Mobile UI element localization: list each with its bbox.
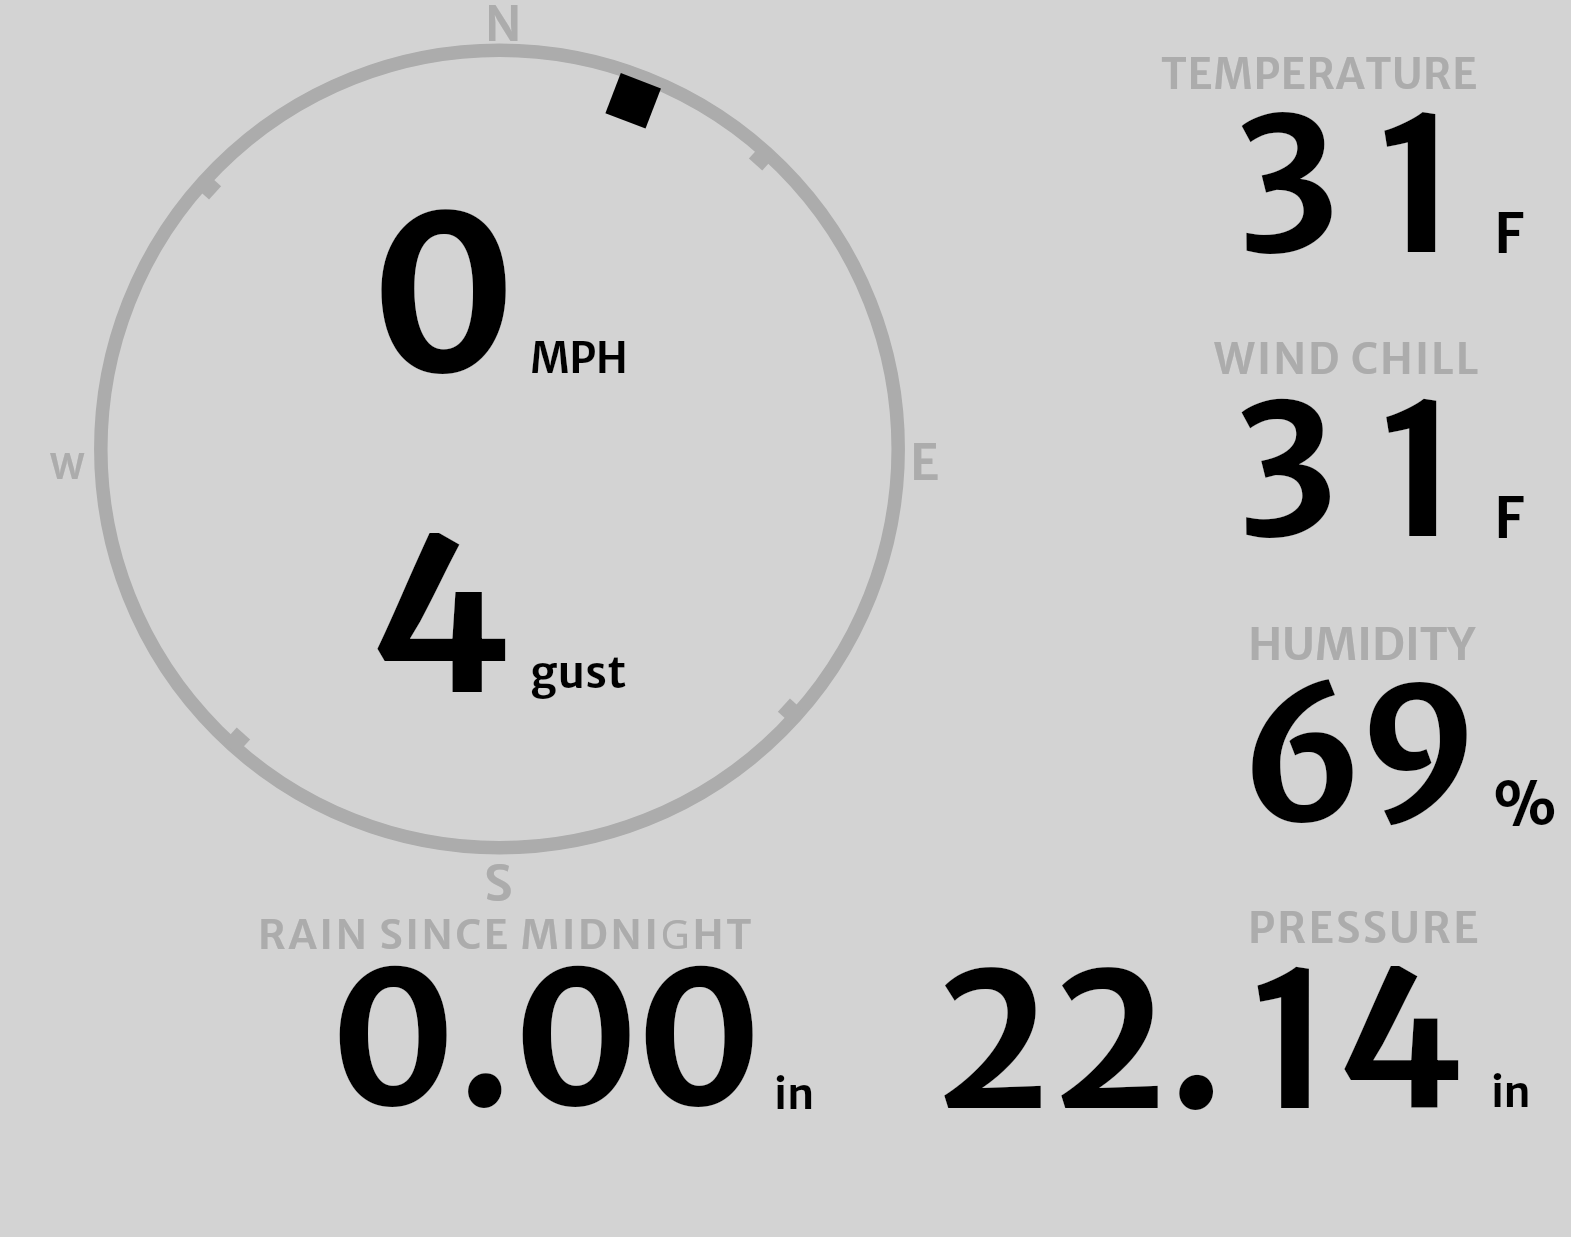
staticText: 1 (1377, 356, 1462, 586)
staticText: 4 (368, 484, 514, 749)
staticText: . (456, 924, 514, 1157)
staticText: 0 (635, 924, 764, 1157)
other: Wind direction compass (0, 0, 1571, 1237)
staticText: 0 (512, 924, 641, 1157)
staticText: 3 (1234, 69, 1341, 303)
staticText: . (1167, 923, 1226, 1159)
button[interactable]: Temperature 31 degrees Fahrenheit (1100, 30, 1560, 300)
staticText: WIND CHILL (1214, 332, 1481, 386)
staticText: % (1493, 766, 1557, 843)
staticText: 2 (1052, 923, 1168, 1159)
staticText: 6 (1240, 644, 1366, 872)
staticText: S (484, 852, 513, 914)
button[interactable]: Rain since midnight 0.00 inches (210, 890, 850, 1140)
button[interactable]: Wind 0 MPH, gust 4 (100, 50, 900, 850)
staticText: F (1494, 483, 1525, 553)
staticText: MPH (530, 332, 628, 385)
staticText: 9 (1357, 641, 1480, 862)
button[interactable]: Wind chill 31 degrees Fahrenheit (1100, 315, 1560, 585)
staticText: gust (530, 645, 627, 700)
staticText: N (485, 0, 522, 53)
staticText: 4 (1336, 923, 1466, 1159)
staticText: 2 (935, 923, 1051, 1159)
staticText: 3 (1234, 356, 1339, 586)
staticText: 0 (369, 160, 519, 431)
staticText: 1 (1248, 923, 1335, 1159)
staticText: W (50, 444, 85, 489)
staticText: in (1491, 1065, 1531, 1118)
staticText: 0 (329, 924, 458, 1157)
staticText: 1 (1375, 69, 1461, 303)
staticText: PRESSURE (1248, 902, 1481, 955)
staticText: F (1494, 199, 1525, 269)
staticText: RAIN SINCE MIDNIGHT (258, 906, 754, 961)
button[interactable]: Pressure 22.14 inches (880, 890, 1560, 1140)
staticText: in (774, 1067, 815, 1121)
staticText: E (910, 432, 940, 493)
staticText: HUMIDITY (1248, 616, 1475, 672)
button[interactable]: Humidity 69 percent (1100, 600, 1560, 870)
staticText: TEMPERATURE (1161, 48, 1479, 100)
